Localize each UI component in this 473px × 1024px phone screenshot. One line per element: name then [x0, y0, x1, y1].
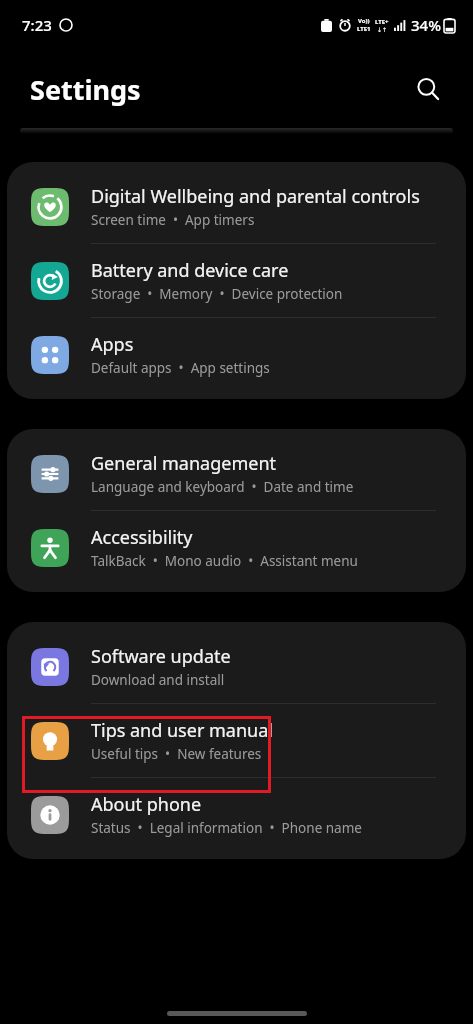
staticText: Download and install — [91, 671, 225, 689]
staticText: Vo)) — [358, 17, 370, 25]
staticText: General management — [91, 451, 277, 476]
staticText: LTE1 — [357, 25, 371, 33]
staticText: Status • Legal information • Phone name — [91, 819, 362, 837]
staticText: ↓↑ — [377, 26, 388, 33]
staticText: About phone — [91, 792, 202, 817]
staticText: Language and keyboard • Date and time — [91, 478, 354, 496]
staticText: Digital Wellbeing and parental controls — [91, 184, 420, 209]
button[interactable]: About phone — [7, 778, 466, 851]
staticText: Default apps • App settings — [91, 359, 270, 377]
staticText: 34% — [411, 15, 441, 35]
button[interactable]: Accessibility — [7, 511, 466, 584]
staticText: Apps — [91, 332, 134, 357]
staticText: Storage • Memory • Device protection — [91, 285, 343, 303]
staticText: Battery and device care — [91, 258, 289, 283]
staticText: Settings — [30, 71, 141, 108]
staticText: Software update — [91, 644, 231, 669]
button[interactable]: General management — [7, 437, 466, 510]
staticText: 7:23 — [22, 15, 52, 35]
button[interactable]: Digital Wellbeing and parental controls — [7, 170, 466, 243]
button[interactable]: Battery and device care — [7, 244, 466, 317]
button[interactable]: Apps — [7, 318, 466, 391]
button[interactable]: Search — [405, 66, 451, 112]
staticText: Tips and user manual — [91, 718, 273, 743]
button[interactable]: Software update — [7, 630, 466, 703]
button[interactable]: Tips and user manual — [7, 704, 466, 777]
staticText: LTE+ — [375, 18, 389, 26]
staticText: Screen time • App timers — [91, 211, 255, 229]
staticText: Accessibility — [91, 525, 193, 550]
staticText: Useful tips • New features — [91, 745, 262, 763]
staticText: TalkBack • Mono audio • Assistant menu — [91, 552, 358, 570]
